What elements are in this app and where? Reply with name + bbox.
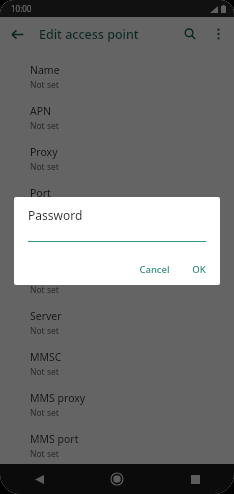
staticText: Not set bbox=[30, 120, 59, 132]
button[interactable]: Proxy bbox=[0, 138, 234, 179]
staticText: Server bbox=[30, 309, 62, 323]
button[interactable]: Back bbox=[0, 17, 34, 51]
button[interactable]: Port bbox=[0, 179, 234, 220]
staticText: MMS port bbox=[30, 432, 79, 446]
staticText: Name bbox=[30, 63, 60, 77]
button[interactable]: Cancel bbox=[132, 259, 177, 280]
button[interactable]: OK bbox=[185, 259, 213, 280]
staticText: Not set bbox=[30, 407, 59, 419]
staticText: Not set bbox=[30, 161, 59, 173]
button[interactable]: APN bbox=[0, 97, 234, 138]
staticText: Not set bbox=[30, 325, 59, 337]
button[interactable]: MMS port bbox=[0, 425, 234, 466]
staticText: Edit access point bbox=[39, 26, 139, 43]
staticText: Not set bbox=[30, 448, 59, 460]
staticText: OK bbox=[192, 263, 206, 276]
staticText: Proxy bbox=[30, 145, 58, 159]
button[interactable]: Username bbox=[0, 220, 234, 261]
staticText: Not set bbox=[30, 366, 59, 378]
button[interactable]: MMS proxy bbox=[0, 384, 234, 425]
staticText: Port bbox=[30, 186, 51, 200]
staticText: 10:00 bbox=[11, 3, 32, 14]
staticText: Not set bbox=[30, 202, 59, 214]
staticText: APN bbox=[30, 104, 52, 118]
button[interactable]: Back bbox=[22, 464, 56, 494]
staticText: MMSC bbox=[30, 350, 62, 364]
staticText: Cancel bbox=[139, 263, 170, 276]
button[interactable]: Server bbox=[0, 302, 234, 343]
button[interactable]: Name bbox=[0, 56, 234, 97]
staticText: Not set bbox=[30, 79, 59, 91]
button[interactable]: Password bbox=[0, 261, 234, 302]
button[interactable]: MMSC bbox=[0, 343, 234, 384]
button[interactable]: Recent apps bbox=[178, 464, 212, 494]
button[interactable]: Home bbox=[100, 464, 134, 494]
button[interactable]: Search bbox=[175, 19, 205, 49]
staticText: Password bbox=[28, 207, 83, 223]
staticText: Not set bbox=[30, 284, 59, 296]
staticText: MMS proxy bbox=[30, 391, 86, 405]
button[interactable]: More options bbox=[205, 21, 231, 47]
